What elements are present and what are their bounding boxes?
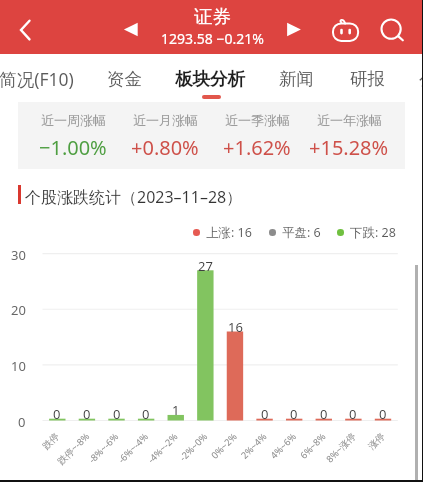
button[interactable]: 研报	[323, 56, 411, 102]
staticText: +15.28%	[309, 134, 389, 161]
staticText: 10	[11, 357, 26, 375]
button[interactable]: 板块分析	[166, 56, 254, 102]
button[interactable]: AI assistant	[328, 8, 364, 46]
staticText: 1293.58 −0.21%	[161, 29, 264, 48]
staticText: 0	[349, 405, 357, 423]
staticText: 下跌: 28	[350, 224, 396, 240]
staticText: 27	[198, 257, 213, 275]
button[interactable]: 简况(F10)	[0, 56, 80, 102]
staticText: −1.00%	[39, 134, 107, 161]
staticText: +0.80%	[131, 134, 199, 161]
button[interactable]: Previous sector	[113, 12, 149, 47]
staticText: 公告	[419, 68, 423, 90]
staticText: 证券	[194, 5, 231, 28]
staticText: 0	[53, 405, 61, 423]
button[interactable]: Next sector	[276, 12, 312, 47]
staticText: 0	[142, 405, 150, 423]
staticText: 板块分析	[175, 68, 245, 90]
staticText: 0	[113, 405, 121, 423]
staticText: 0	[18, 413, 26, 431]
staticText: 资金	[107, 68, 142, 90]
staticText: 简况(F10)	[0, 67, 74, 91]
staticText: 近一季涨幅	[225, 112, 290, 128]
button[interactable]: 下跌: 28	[337, 224, 396, 240]
staticText: 上涨: 16	[206, 224, 252, 240]
staticText: 16	[228, 318, 243, 336]
staticText: 近一年涨幅	[317, 112, 382, 128]
staticText: 新闻	[279, 68, 314, 90]
button[interactable]: 资金	[80, 56, 168, 102]
button[interactable]: 平盘: 6	[269, 224, 321, 240]
staticText: 研报	[350, 68, 385, 90]
staticText: 平盘: 6	[282, 224, 321, 240]
staticText: 0	[320, 405, 328, 423]
staticText: 个股涨跌统计（2023–11–28）	[25, 186, 243, 208]
staticText: 0	[379, 405, 387, 423]
button[interactable]: 证券	[141, 5, 283, 48]
button[interactable]: Back	[6, 9, 44, 49]
staticText: 近一周涨幅	[41, 112, 106, 128]
button[interactable]: 上涨: 16	[193, 224, 252, 240]
staticText: 30	[11, 246, 26, 264]
staticText: +1.62%	[223, 134, 291, 161]
staticText: 0	[261, 405, 269, 423]
button[interactable]: Search	[373, 10, 409, 48]
staticText: 1	[172, 401, 180, 419]
staticText: 近一月涨幅	[133, 112, 198, 128]
staticText: 0	[290, 405, 298, 423]
button[interactable]: 公告	[392, 56, 423, 102]
staticText: 20	[11, 301, 26, 319]
button[interactable]: 新闻	[252, 56, 340, 102]
staticText: 0	[83, 405, 91, 423]
